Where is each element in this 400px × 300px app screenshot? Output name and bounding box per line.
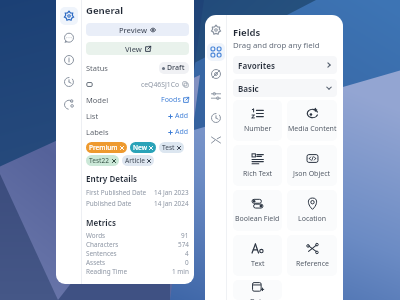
staticText: Reference — [296, 259, 329, 269]
button[interactable]: Labels — [86, 124, 189, 140]
button[interactable]: Preview — [86, 23, 189, 36]
button[interactable]: First Published Date — [86, 187, 189, 198]
staticText: New — [133, 143, 147, 152]
staticText: Rich Text — [243, 169, 273, 179]
staticText: Test — [162, 143, 175, 152]
staticText: Words — [86, 231, 106, 240]
staticText: Premium — [89, 143, 118, 152]
button[interactable]: Location — [287, 190, 337, 231]
button[interactable]: Comments — [58, 27, 80, 49]
button[interactable]: New — [130, 142, 156, 153]
staticText: Model — [86, 95, 109, 105]
staticText: Text — [251, 259, 265, 269]
button[interactable]: Basic — [233, 79, 337, 97]
button[interactable]: Media Content — [287, 100, 337, 141]
staticText: View — [125, 44, 142, 54]
staticText: Preview — [119, 25, 147, 35]
staticText: Location — [298, 214, 327, 224]
staticText: ceQ46SJ1Co — [141, 80, 180, 89]
button[interactable]: Model — [86, 92, 189, 108]
button[interactable]: Reference — [287, 235, 337, 276]
button[interactable]: Test22 — [86, 155, 119, 166]
button[interactable]: History — [205, 107, 226, 129]
staticText: Sentences — [86, 249, 117, 258]
staticText: Draft — [167, 63, 185, 73]
staticText: Favorites — [238, 60, 275, 71]
button[interactable]: Appearance — [205, 63, 226, 85]
staticText: Characters — [86, 240, 119, 249]
button[interactable]: Published Date — [86, 198, 189, 209]
button[interactable]: Words — [86, 231, 189, 240]
staticText: First Published Date — [86, 188, 147, 197]
button[interactable]: Add — [168, 111, 189, 121]
button[interactable]: View — [86, 42, 189, 55]
staticText: Number — [244, 124, 272, 134]
staticText: Foods — [161, 95, 181, 105]
staticText: Entry Details — [86, 173, 138, 184]
staticText: Published Date — [86, 199, 132, 208]
staticText: Json Object — [293, 169, 331, 179]
staticText: Date — [250, 297, 266, 300]
staticText: Add — [175, 111, 189, 121]
button[interactable]: Assets — [86, 258, 189, 267]
button[interactable]: Characters — [86, 240, 189, 249]
staticText: Reading Time — [86, 267, 128, 276]
staticText: Assets — [86, 258, 106, 267]
staticText: 4 — [185, 249, 189, 258]
staticText: Media Content — [288, 124, 337, 134]
button[interactable]: ceQ46SJ1Co — [86, 76, 189, 92]
staticText: 0 — [185, 258, 189, 267]
button[interactable]: Date — [233, 280, 282, 300]
button[interactable]: Json Object — [287, 145, 337, 186]
staticText: Boolean Field — [235, 214, 280, 224]
staticText: Metrics — [86, 217, 116, 228]
button[interactable]: Reading Time — [86, 267, 189, 276]
staticText: General — [86, 4, 123, 17]
button[interactable]: List — [86, 108, 189, 124]
button[interactable]: Premium — [86, 142, 127, 153]
button[interactable]: Relations — [58, 93, 80, 115]
staticText: 91 — [181, 231, 189, 240]
button[interactable]: Number — [233, 100, 282, 141]
button[interactable]: Sentences — [86, 249, 189, 258]
button[interactable]: Test — [159, 142, 184, 153]
button[interactable]: Fields — [205, 41, 226, 63]
staticText: Test22 — [89, 156, 110, 165]
staticText: 14 Jan 2024 — [154, 199, 189, 208]
staticText: Add — [175, 127, 189, 137]
staticText: Article — [125, 156, 145, 165]
staticText: Status — [86, 63, 108, 73]
button[interactable]: Info — [58, 49, 80, 71]
button[interactable]: Settings — [58, 5, 80, 27]
button[interactable]: Foods — [161, 95, 189, 105]
button[interactable]: Text — [233, 235, 282, 276]
button[interactable]: Status — [86, 60, 189, 76]
staticText: 1 min — [172, 267, 189, 276]
staticText: 574 — [178, 240, 189, 249]
button[interactable]: History — [58, 71, 80, 93]
staticText: 14 Jan 2023 — [154, 188, 189, 197]
button[interactable]: Filters — [205, 85, 226, 107]
button[interactable]: Favorites — [233, 56, 337, 74]
button[interactable]: Shuffle — [205, 129, 226, 151]
staticText: Basic — [238, 83, 259, 94]
button[interactable]: Article — [122, 155, 154, 166]
button[interactable]: Copy ID — [182, 81, 189, 88]
staticText: List — [86, 111, 99, 121]
button[interactable]: Add — [168, 127, 189, 137]
staticText: Drag and drop any field — [233, 40, 320, 51]
staticText: Labels — [86, 127, 109, 137]
button[interactable]: Draft — [159, 62, 189, 74]
button[interactable]: Boolean Field — [233, 190, 282, 231]
staticText: Fields — [233, 26, 261, 39]
button[interactable]: Rich Text — [233, 145, 282, 186]
button[interactable]: Settings — [205, 19, 226, 41]
